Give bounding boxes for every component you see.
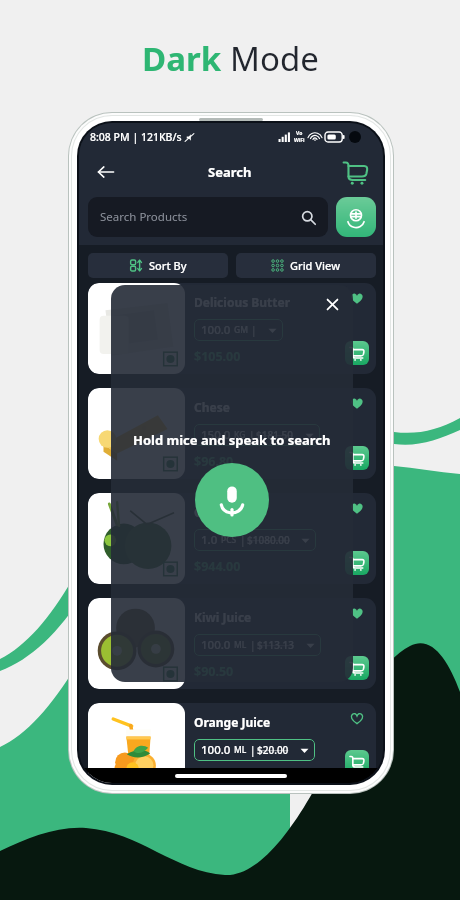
button[interactable]: Add to cart	[345, 446, 369, 470]
button[interactable]: Favorite	[346, 287, 368, 309]
button[interactable]: Kiwi Juice	[88, 598, 376, 689]
staticText: |	[250, 743, 256, 757]
staticText: Grid View	[290, 258, 341, 273]
button[interactable]: Favorite	[346, 707, 368, 729]
staticText: $105.00	[194, 348, 241, 365]
button[interactable]: 100.0	[194, 634, 321, 656]
staticText: Search	[208, 163, 252, 181]
staticText: |	[250, 638, 256, 652]
staticText: Chese	[194, 399, 230, 415]
staticText: WiFi	[294, 137, 305, 144]
button[interactable]: 100.0	[194, 739, 315, 761]
staticText: $944.00	[194, 558, 241, 575]
button[interactable]: Add to cart	[345, 656, 369, 680]
staticText: $181.50	[256, 428, 294, 442]
staticText: 1.0	[201, 532, 218, 548]
staticText: Vo	[296, 130, 303, 137]
staticText: Mode	[230, 36, 319, 81]
staticText: 8:08 PM | 121KB/s	[90, 130, 182, 144]
button[interactable]: Add to cart	[345, 551, 369, 575]
button[interactable]: Grid View	[236, 253, 376, 278]
staticText: GM	[234, 324, 248, 336]
button[interactable]: Sort By	[88, 253, 228, 278]
staticText: 150.0	[201, 427, 231, 443]
button[interactable]: Chese	[88, 388, 376, 479]
staticText: |	[251, 323, 257, 337]
staticText: Coconut	[194, 504, 244, 520]
button[interactable]: Add to cart	[345, 341, 369, 365]
button[interactable]: Search Products	[88, 197, 328, 237]
button[interactable]: Add to cart	[345, 750, 369, 774]
staticText: $17.00	[194, 768, 234, 783]
button[interactable]: Back	[91, 157, 121, 187]
staticText: $113.13	[257, 638, 295, 652]
staticText: Hold mice and speak to search	[133, 431, 331, 449]
button[interactable]: Coconut	[88, 493, 376, 584]
staticText: Dark	[142, 36, 230, 81]
button[interactable]: Favorite	[346, 392, 368, 414]
staticText: Kiwi Juice	[194, 609, 252, 625]
staticText: Orange Juice	[194, 714, 271, 730]
staticText: PCS	[221, 534, 237, 546]
button[interactable]: 1.0	[194, 529, 316, 551]
staticText: $96.80	[194, 453, 234, 470]
staticText: Search Products	[100, 209, 188, 225]
staticText: Sort By	[149, 258, 187, 273]
staticText: 100.0	[201, 637, 231, 653]
staticText: 100.0	[201, 322, 231, 338]
button[interactable]: Delicious Butter	[88, 283, 376, 374]
staticText: 100.0	[201, 742, 231, 758]
staticText: ML	[234, 744, 247, 756]
button[interactable]: Cart	[339, 156, 371, 188]
button[interactable]: Microphone	[195, 463, 269, 537]
button[interactable]: Orange Juice	[88, 703, 376, 783]
staticText: ML	[234, 639, 247, 651]
staticText: |	[240, 533, 246, 547]
staticText: |	[249, 428, 255, 442]
staticText: $90.50	[194, 663, 234, 680]
button[interactable]: 150.0	[194, 424, 320, 446]
staticText: Delicious Butter	[194, 294, 291, 310]
button[interactable]: Close	[321, 293, 343, 315]
button[interactable]: Favorite	[346, 602, 368, 624]
staticText: $20.00	[257, 743, 289, 757]
staticText: $1080.00	[247, 533, 290, 547]
button[interactable]: Voice search	[336, 197, 376, 237]
staticText: KG	[234, 429, 246, 441]
button[interactable]: 100.0	[194, 319, 283, 341]
button[interactable]: Favorite	[346, 497, 368, 519]
